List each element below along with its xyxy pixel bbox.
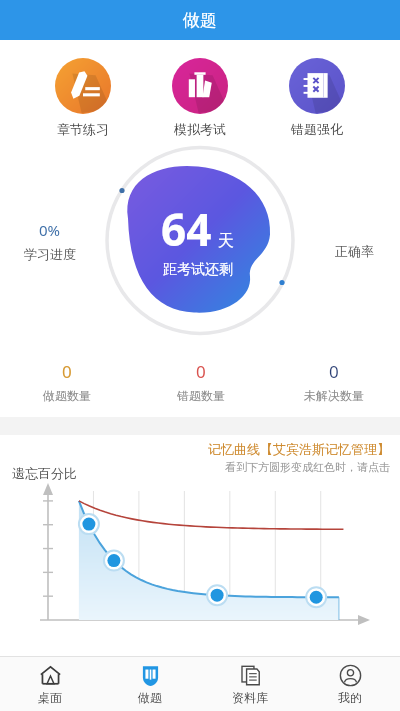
staticText: 我的 bbox=[338, 690, 362, 705]
button[interactable]: 0 bbox=[134, 356, 267, 407]
staticText: 距考试还剩 bbox=[163, 261, 233, 279]
other: 模拟考试 bbox=[172, 58, 228, 114]
staticText: 天 bbox=[218, 231, 234, 251]
staticText: 做题数量 bbox=[43, 388, 91, 403]
staticText: 做题 bbox=[138, 690, 162, 705]
button[interactable]: 0 bbox=[0, 356, 134, 407]
button[interactable]: 错题强化 bbox=[283, 56, 351, 139]
staticText: 0 bbox=[62, 360, 72, 383]
staticText: 章节练习 bbox=[57, 121, 109, 137]
staticText: 错题强化 bbox=[291, 121, 343, 137]
staticText: 0 bbox=[329, 360, 339, 383]
button[interactable]: 我的 bbox=[300, 659, 400, 710]
staticText: 错题数量 bbox=[177, 388, 225, 403]
button[interactable]: 模拟考试 bbox=[166, 56, 234, 139]
staticText: 0% bbox=[39, 220, 61, 240]
staticText: 资料库 bbox=[232, 690, 268, 705]
button[interactable]: 章节练习 bbox=[49, 56, 117, 139]
other: 错题强化 bbox=[289, 58, 345, 114]
button[interactable]: 桌面 bbox=[0, 659, 100, 710]
staticText: 看到下方圆形变成红色时，请点击 bbox=[225, 460, 390, 474]
staticText: 学习进度 bbox=[24, 246, 76, 262]
staticText: 遗忘百分比 bbox=[12, 465, 77, 481]
button[interactable]: 资料库 bbox=[200, 659, 300, 710]
button[interactable]: 做题 bbox=[100, 659, 200, 710]
other: 章节练习 bbox=[55, 58, 111, 114]
staticText: 未解决数量 bbox=[304, 388, 364, 403]
staticText: 0 bbox=[196, 360, 206, 383]
staticText: 正确率 bbox=[335, 243, 374, 259]
staticText: 记忆曲线【艾宾浩斯记忆管理】 bbox=[208, 441, 390, 457]
staticText: 模拟考试 bbox=[174, 121, 226, 137]
staticText: 桌面 bbox=[38, 690, 62, 705]
button[interactable]: 0 bbox=[267, 356, 400, 407]
staticText: 64 bbox=[161, 199, 212, 259]
staticText: 做题 bbox=[183, 10, 217, 31]
